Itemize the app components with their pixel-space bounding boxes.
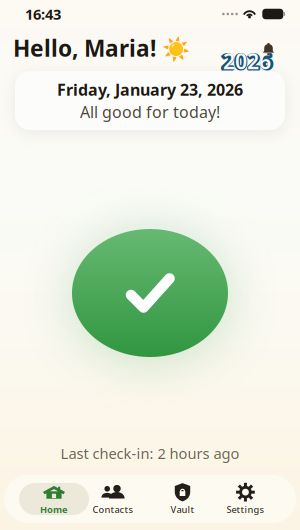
staticText: Contacts: [92, 503, 133, 516]
button[interactable]: Contacts: [82, 483, 144, 515]
staticText: Hello, Maria! ☀️: [13, 33, 190, 63]
button[interactable]: Settings: [215, 483, 277, 515]
button[interactable]: Vault: [156, 483, 208, 515]
staticText: All good for today!: [80, 101, 220, 122]
staticText: 2026: [221, 45, 273, 75]
button[interactable]: Check in: [72, 229, 228, 357]
staticText: 2026: [223, 47, 271, 75]
staticText: Last check-in: 2 hours ago: [60, 443, 239, 463]
staticText: Home: [40, 503, 68, 516]
button[interactable]: Notifications: [224, 40, 276, 74]
staticText: 2026: [222, 46, 274, 76]
staticText: 2026: [221, 47, 273, 77]
staticText: Settings: [227, 503, 265, 516]
staticText: 16:43: [25, 4, 61, 24]
button[interactable]: Home: [19, 483, 89, 515]
staticText: Friday, January 23, 2026: [57, 79, 243, 100]
staticText: Vault: [170, 503, 194, 516]
staticText: 2026: [220, 46, 272, 76]
